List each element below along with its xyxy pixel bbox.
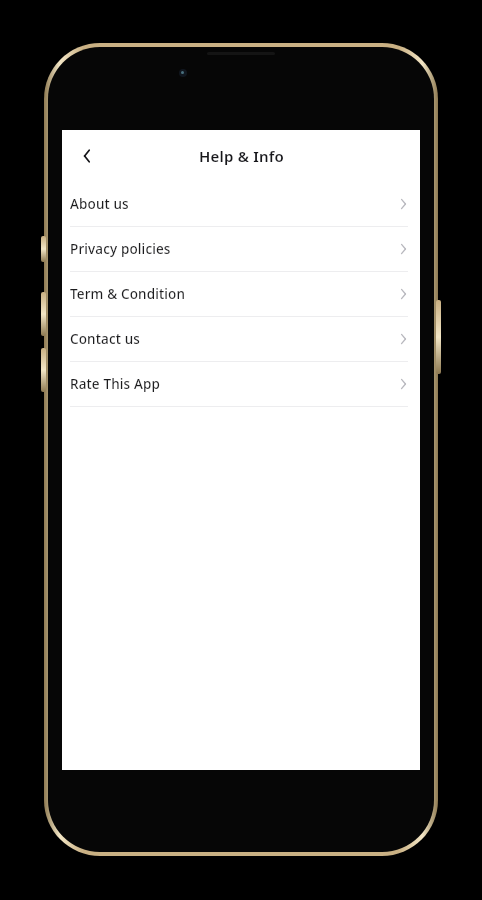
staticText: Help & Info	[199, 146, 284, 166]
button[interactable]: About us	[62, 182, 420, 226]
button[interactable]: Term & Condition	[62, 272, 420, 316]
staticText: About us	[70, 195, 129, 213]
staticText: Rate This App	[70, 375, 160, 393]
staticText: Privacy policies	[70, 240, 171, 258]
staticText: Contact us	[70, 330, 141, 348]
button[interactable]: Contact us	[62, 317, 420, 361]
staticText: Term & Condition	[70, 285, 186, 303]
button[interactable]: Privacy policies	[62, 227, 420, 271]
button[interactable]: Back	[66, 135, 108, 177]
button[interactable]: Rate This App	[62, 362, 420, 406]
